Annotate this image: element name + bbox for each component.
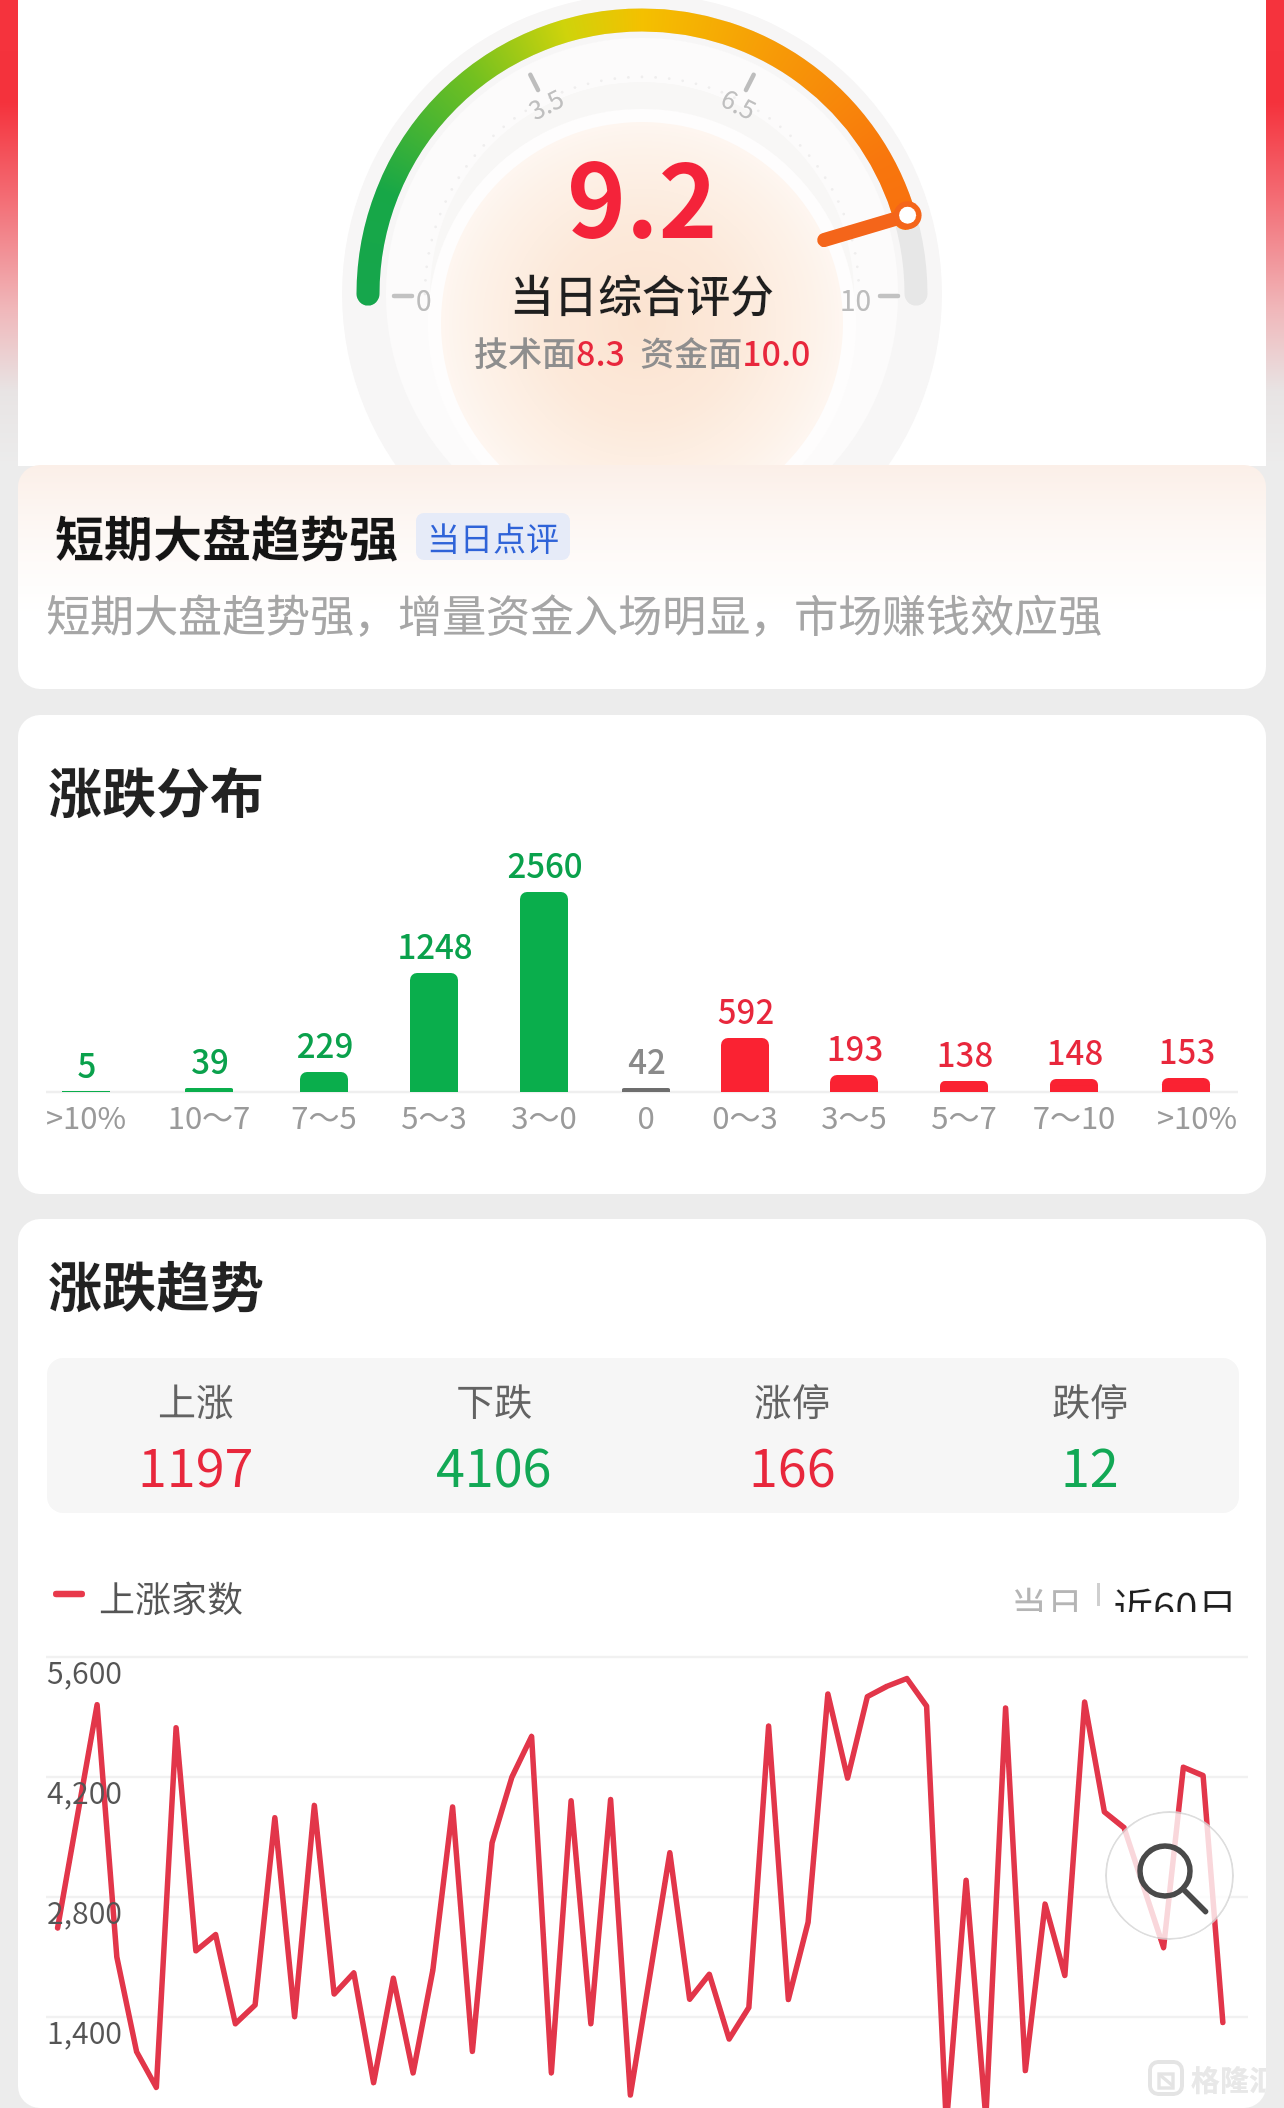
staticText: 193 <box>785 1023 925 1071</box>
staticText: >10% <box>18 1093 156 1138</box>
staticText: 技术面8.3 资金面10.0 <box>474 327 811 376</box>
button[interactable]: 跌停 <box>941 1358 1239 1513</box>
staticText: 1197 <box>138 1427 254 1502</box>
button[interactable]: 涨跌分布 <box>18 715 1266 1194</box>
staticText: 当日点评 <box>427 513 559 560</box>
staticText: 5～3 <box>364 1093 504 1138</box>
staticText: 0～3 <box>675 1093 815 1138</box>
staticText: 0 <box>416 279 432 320</box>
button[interactable]: 当日 <box>1009 1570 1086 1618</box>
staticText: 下跌 <box>456 1372 533 1427</box>
staticText: 0 <box>576 1093 716 1138</box>
staticText: 10 <box>840 279 872 320</box>
staticText: 5 <box>18 1040 157 1088</box>
staticText: 5～7 <box>894 1093 1034 1138</box>
button[interactable]: Zoom chart <box>1105 1811 1234 1940</box>
staticText: 229 <box>255 1020 395 1068</box>
staticText: 592 <box>676 986 816 1034</box>
staticText: 12 <box>1061 1427 1119 1502</box>
button[interactable]: 涨跌趋势 <box>18 1219 1266 2108</box>
staticText: 4,200 <box>47 1769 122 1812</box>
staticText: 3～0 <box>474 1093 614 1138</box>
staticText: 短期大盘趋势强 <box>55 500 399 571</box>
staticText: 当日 <box>1011 1576 1084 1612</box>
staticText: 涨跌分布 <box>48 750 264 828</box>
button[interactable]: 短期大盘趋势强 <box>18 465 1266 689</box>
staticText: 5,600 <box>47 1649 122 1692</box>
staticText: 6.5 <box>716 79 763 127</box>
staticText: 153 <box>1117 1026 1257 1074</box>
staticText: >10% <box>1127 1093 1266 1138</box>
staticText: 7～10 <box>1004 1093 1144 1138</box>
staticText: 7～5 <box>254 1093 394 1138</box>
staticText: 42 <box>577 1036 717 1084</box>
staticText: 148 <box>1005 1027 1145 1075</box>
staticText: 1248 <box>365 921 505 969</box>
staticText: 涨停 <box>754 1372 831 1427</box>
staticText: 涨跌趋势 <box>48 1244 264 1322</box>
staticText: 当日综合评分 <box>510 261 774 325</box>
staticText: 2,800 <box>47 1889 122 1932</box>
staticText: 138 <box>895 1029 1035 1077</box>
staticText: 2560 <box>475 840 615 888</box>
staticText: 10～7 <box>139 1093 279 1138</box>
staticText: 上涨 <box>158 1372 235 1427</box>
button[interactable]: 当日点评 <box>416 513 570 560</box>
button[interactable]: 下跌 <box>345 1358 643 1513</box>
staticText: 3.5 <box>522 79 569 127</box>
staticText: 39 <box>140 1036 280 1084</box>
staticText: 4106 <box>436 1427 552 1502</box>
staticText: 上涨家数 <box>99 1570 244 1618</box>
staticText: 166 <box>749 1427 836 1502</box>
staticText: 跌停 <box>1052 1372 1129 1427</box>
staticText: 3～5 <box>784 1093 924 1138</box>
staticText: 格隆汇 <box>1191 2057 1266 2099</box>
staticText: 9.2 <box>567 122 718 267</box>
staticText: 1,400 <box>47 2009 122 2052</box>
staticText: 短期大盘趋势强，增量资金入场明显，市场赚钱效应强 <box>46 581 1102 645</box>
button[interactable]: 涨停 <box>643 1358 941 1513</box>
button[interactable]: 上涨 <box>47 1358 345 1513</box>
staticText: 近60日 <box>1113 1576 1238 1612</box>
button[interactable]: 近60日 <box>1111 1570 1240 1618</box>
